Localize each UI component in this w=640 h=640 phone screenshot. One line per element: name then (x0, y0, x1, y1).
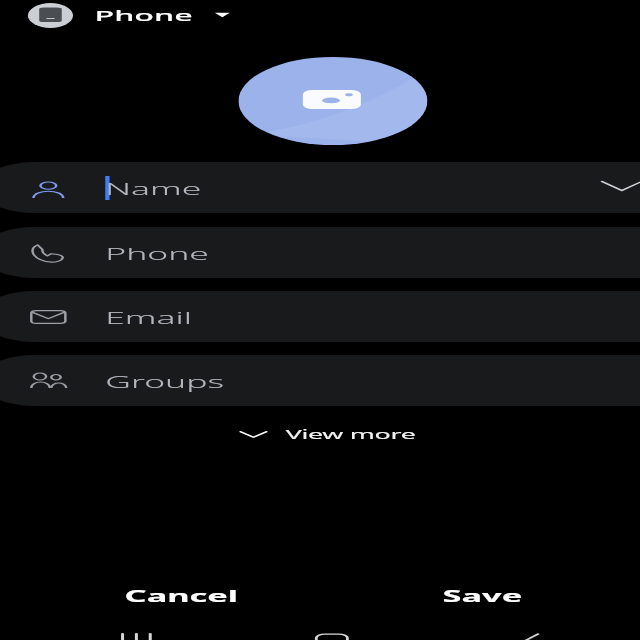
button[interactable]: Expand name fields (599, 172, 640, 197)
staticText: Name (105, 177, 202, 199)
button[interactable]: Groups (0, 355, 640, 406)
staticText: Save (442, 585, 524, 607)
staticText: Phone (94, 5, 193, 25)
staticText: View more (286, 426, 417, 443)
button[interactable]: Cancel (116, 580, 245, 612)
staticText: Email (105, 306, 193, 328)
button[interactable]: Phone (28, 1, 230, 29)
button[interactable]: Back (498, 628, 558, 640)
staticText: Phone (105, 242, 211, 264)
button[interactable]: Home (301, 629, 363, 640)
button[interactable]: Add photo (238, 57, 427, 145)
button[interactable]: Phone (0, 227, 640, 278)
staticText: Groups (105, 370, 226, 392)
button[interactable]: Recents (112, 629, 161, 640)
button[interactable]: View more (241, 418, 417, 450)
button[interactable]: Name (0, 162, 640, 213)
button[interactable]: Email (0, 291, 640, 342)
button[interactable]: Save (427, 580, 539, 612)
staticText: Cancel (125, 585, 238, 607)
